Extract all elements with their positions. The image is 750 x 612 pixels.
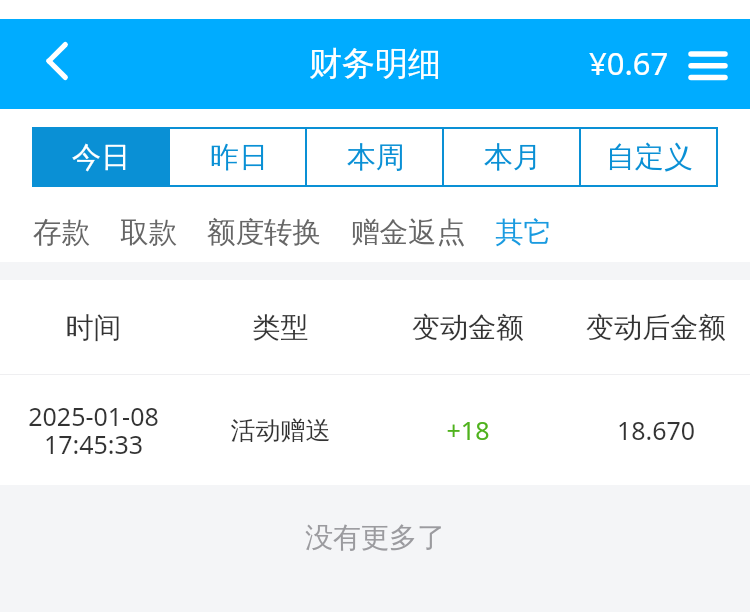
staticText: 存款 bbox=[33, 215, 90, 251]
staticText: 赠金返点 bbox=[351, 215, 465, 251]
staticText: 昨日 bbox=[210, 139, 268, 176]
staticText: 类型 bbox=[187, 310, 374, 345]
staticText: 变动后金额 bbox=[562, 310, 750, 345]
staticText: 18.670 bbox=[562, 413, 750, 447]
staticText: 取款 bbox=[120, 215, 177, 251]
button[interactable]: 今日 bbox=[32, 127, 170, 187]
button[interactable]: 2025-01-08 17:45:33 bbox=[0, 375, 750, 485]
staticText: 其它 bbox=[495, 215, 552, 251]
button[interactable]: ¥0.67 bbox=[589, 42, 669, 84]
button[interactable]: 取款 bbox=[105, 207, 192, 259]
staticText: 今日 bbox=[72, 139, 130, 176]
button[interactable]: 赠金返点 bbox=[336, 207, 480, 259]
staticText: 财务明细 bbox=[309, 43, 441, 85]
button[interactable]: 其它 bbox=[480, 207, 567, 259]
staticText: 2025-01-08 17:45:33 bbox=[0, 399, 187, 461]
staticText: 额度转换 bbox=[207, 215, 321, 251]
staticText: 没有更多了 bbox=[305, 520, 445, 555]
button[interactable]: 存款 bbox=[18, 207, 105, 259]
button[interactable]: Menu bbox=[680, 19, 736, 109]
button[interactable]: 昨日 bbox=[170, 127, 307, 187]
button[interactable]: 额度转换 bbox=[192, 207, 336, 259]
staticText: 变动金额 bbox=[374, 310, 562, 345]
staticText: +18 bbox=[374, 413, 562, 447]
staticText: 本月 bbox=[484, 139, 542, 176]
button[interactable]: 本周 bbox=[307, 127, 444, 187]
staticText: 活动赠送 bbox=[187, 415, 374, 446]
staticText: 时间 bbox=[0, 310, 187, 345]
button[interactable]: Back bbox=[0, 19, 105, 109]
staticText: 本周 bbox=[347, 139, 405, 176]
staticText: 自定义 bbox=[606, 139, 693, 176]
button[interactable]: 本月 bbox=[444, 127, 581, 187]
button[interactable]: 自定义 bbox=[581, 127, 718, 187]
